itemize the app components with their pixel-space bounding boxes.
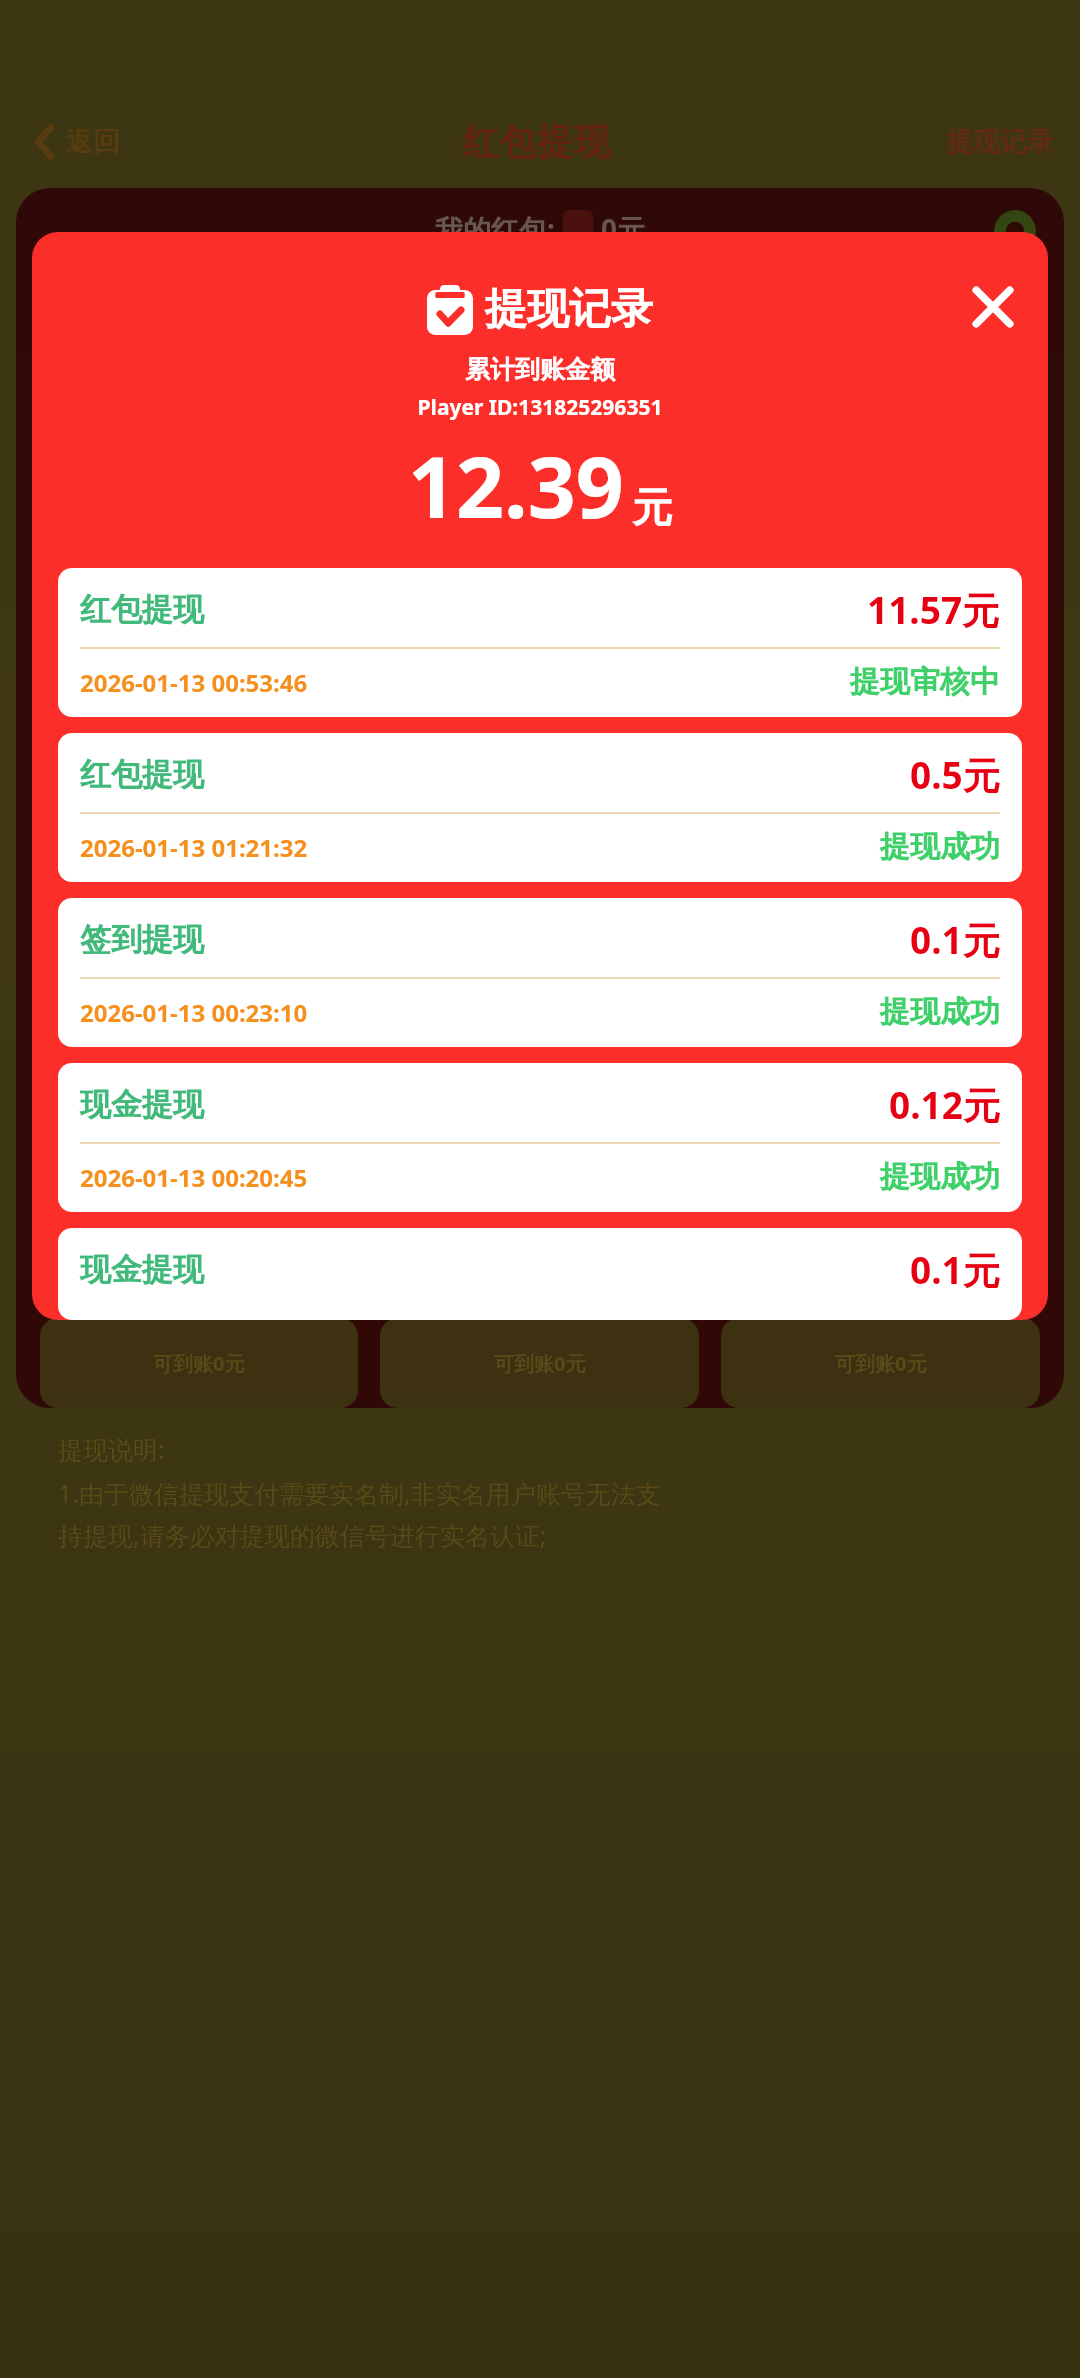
- button[interactable]: 可到账0元: [721, 1318, 1040, 1408]
- button[interactable]: 签到提现: [58, 898, 1022, 1047]
- staticText: 0.5元: [910, 749, 1000, 800]
- button[interactable]: 现金提现: [58, 1228, 1022, 1320]
- button[interactable]: Settings: [986, 202, 1044, 260]
- staticText: 0.1元: [910, 914, 1000, 965]
- button[interactable]: 提现记录: [946, 125, 1054, 159]
- staticText: Player ID:131825296351: [32, 393, 1048, 422]
- staticText: 11.57元: [867, 584, 1000, 635]
- staticText: 提现成功: [880, 828, 1000, 866]
- staticText: 2026-01-13 01:21:32: [80, 831, 308, 864]
- staticText: 提现成功: [880, 993, 1000, 1031]
- staticText: 返回: [66, 125, 120, 159]
- staticText: 红包提现: [462, 119, 610, 166]
- staticText: 红包提现: [80, 755, 204, 794]
- staticText: 我的红包:: [435, 210, 555, 248]
- staticText: 提现说明:: [58, 1432, 165, 1466]
- staticText: 12.39: [408, 428, 624, 542]
- staticText: 2026-01-13 00:23:10: [80, 996, 308, 1029]
- staticText: 持提现,请务必对提现的微信号进行实名认证;: [58, 1518, 547, 1552]
- button[interactable]: 可到账0元: [40, 1318, 358, 1408]
- staticText: 提现成功: [880, 1158, 1000, 1196]
- button[interactable]: 红包提现: [58, 733, 1022, 882]
- staticText: 2026-01-13 00:20:45: [80, 1161, 308, 1194]
- staticText: 提现审核中: [850, 663, 1000, 701]
- staticText: 元: [632, 482, 672, 532]
- staticText: 可到账0元: [153, 1350, 245, 1377]
- staticText: 现金提现: [80, 1250, 204, 1289]
- staticText: 签到提现: [80, 920, 204, 959]
- button[interactable]: 返回: [26, 119, 126, 165]
- staticText: 2026-01-13 00:53:46: [80, 666, 308, 699]
- staticText: 0元: [601, 210, 646, 248]
- button[interactable]: 现金提现: [58, 1063, 1022, 1212]
- staticText: 红包提现: [80, 590, 204, 629]
- staticText: 累计到账金额: [32, 354, 1048, 385]
- staticText: 现金提现: [80, 1085, 204, 1124]
- staticText: 1.由于微信提现支付需要实名制,非实名用户账号无法支: [58, 1476, 661, 1510]
- staticText: 可到账0元: [835, 1350, 927, 1377]
- staticText: 可到账0元: [494, 1350, 586, 1377]
- staticText: 0.12元: [889, 1079, 1000, 1130]
- button[interactable]: 可到账0元: [380, 1318, 699, 1408]
- button[interactable]: 红包提现: [58, 568, 1022, 717]
- staticText: 0.1元: [910, 1244, 1000, 1295]
- button[interactable]: Close: [960, 274, 1026, 340]
- staticText: 提现记录: [485, 283, 653, 336]
